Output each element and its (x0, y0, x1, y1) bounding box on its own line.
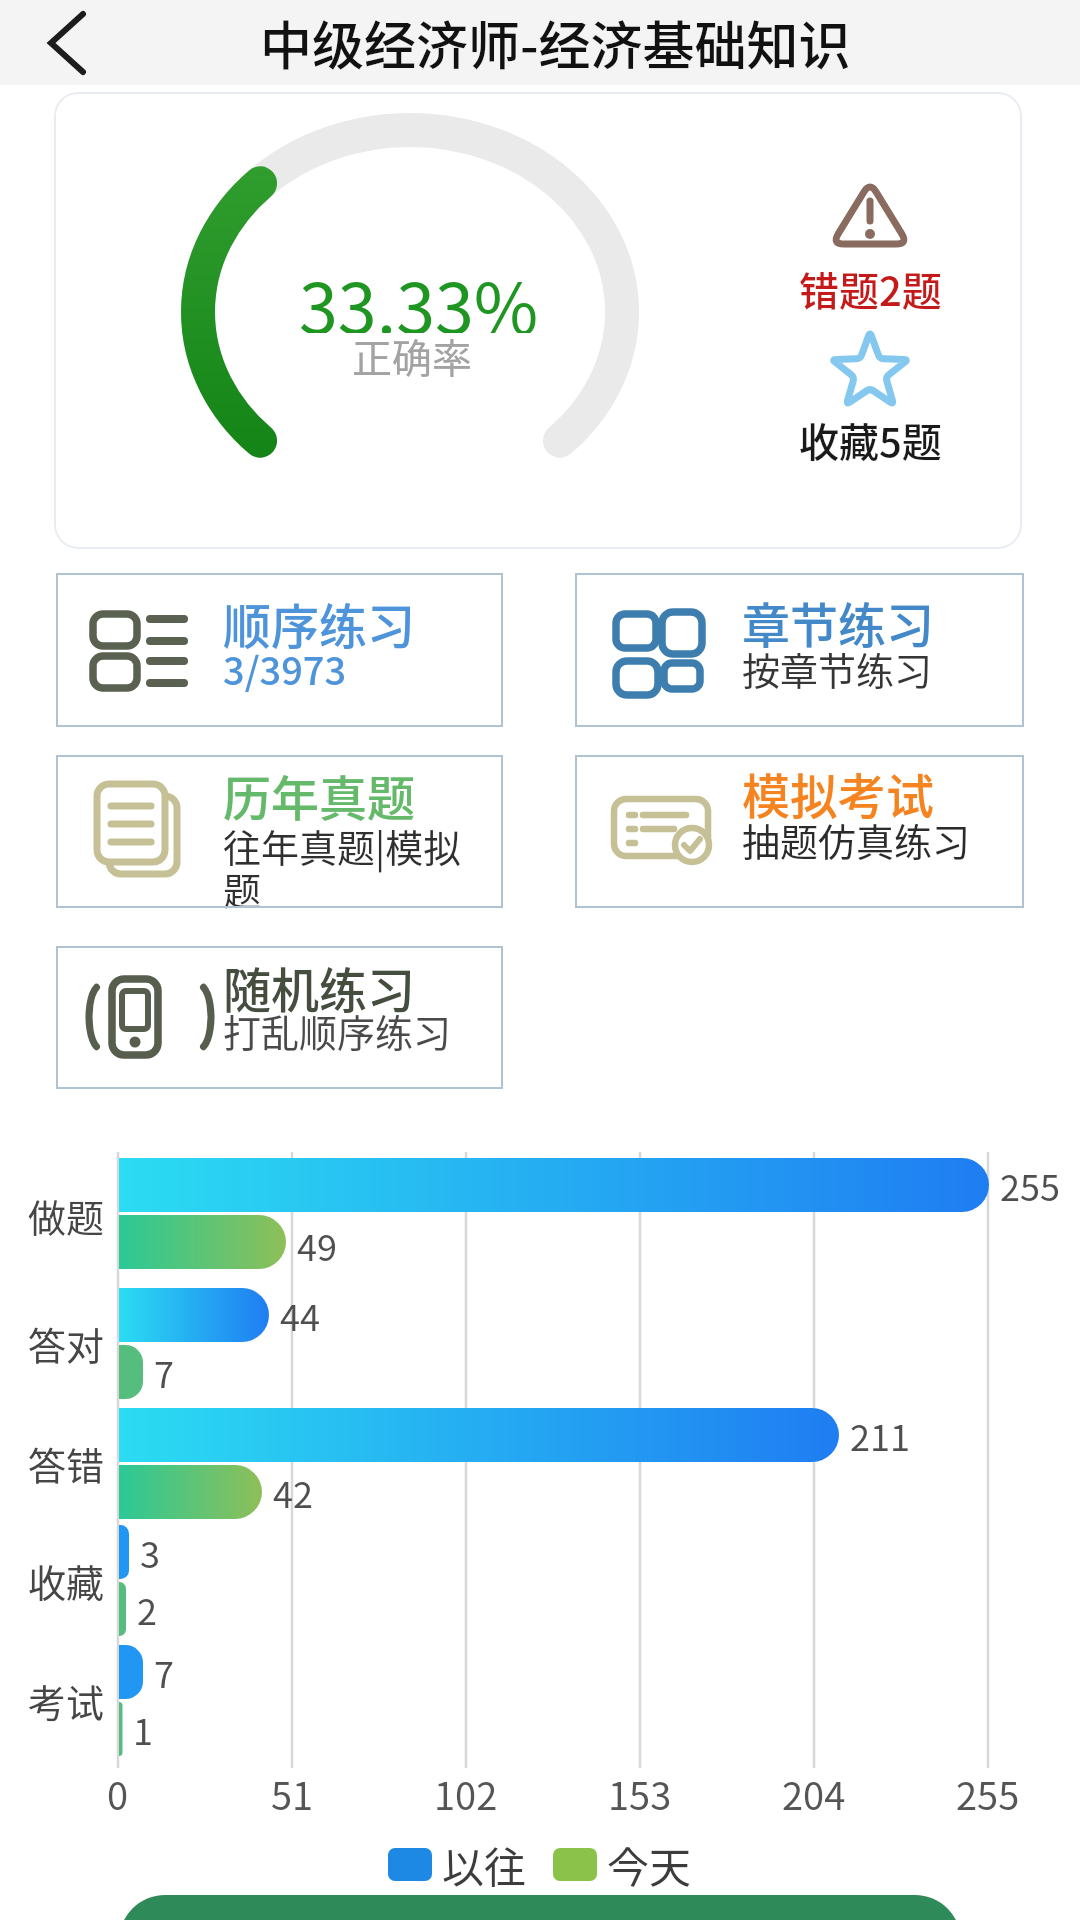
button[interactable] (119, 1895, 961, 1920)
staticText: 204 (782, 1766, 846, 1821)
staticText: 7 (154, 1346, 174, 1398)
staticText: 历年真题 (223, 760, 416, 830)
button[interactable] (36, 8, 100, 78)
staticText: 中级经济师-经济基础知识 (260, 5, 851, 75)
staticText: 7 (154, 1646, 174, 1698)
staticText: 答错 (28, 1436, 105, 1491)
staticText: 44 (280, 1289, 320, 1341)
staticText: 答对 (28, 1316, 105, 1371)
staticText: 3/3973 (223, 641, 347, 696)
staticText: 打乱顺序练习 (223, 1003, 452, 1058)
button[interactable]: 历年真题 (56, 755, 503, 908)
staticText: 1 (133, 1703, 153, 1755)
staticText: 3 (140, 1526, 160, 1578)
staticText: 做题 (28, 1188, 105, 1243)
staticText: 以往 (442, 1834, 527, 1895)
button[interactable]: 模拟考试 (575, 755, 1024, 908)
staticText: 42 (273, 1466, 313, 1518)
staticText: 153 (608, 1766, 672, 1821)
staticText: 模拟考试 (742, 758, 935, 828)
staticText: 错题2题 (799, 260, 942, 318)
button[interactable]: 随机练习 (56, 946, 503, 1089)
staticText: 收藏 (28, 1553, 105, 1608)
staticText: 收藏5题 (799, 411, 942, 469)
staticText: 考试 (28, 1673, 105, 1728)
button[interactable]: 顺序练习 (56, 573, 503, 727)
staticText: 按章节练习 (742, 641, 933, 696)
staticText: 211 (850, 1409, 910, 1461)
staticText: 2 (137, 1583, 157, 1635)
staticText: 今天 (607, 1834, 692, 1895)
staticText: 33.33% (299, 253, 539, 333)
staticText: 51 (271, 1766, 314, 1821)
staticText: 102 (434, 1766, 498, 1821)
staticText: 255 (956, 1766, 1020, 1821)
staticText: 正确率 (352, 327, 472, 385)
staticText: 255 (1000, 1159, 1060, 1211)
staticText: 章节练习 (742, 587, 935, 657)
staticText: 49 (297, 1219, 337, 1271)
staticText: 往年真题|模拟题 (223, 818, 475, 916)
button[interactable]: 章节练习 (575, 573, 1024, 727)
staticText: 0 (107, 1766, 129, 1821)
staticText: 抽题仿真练习 (742, 812, 971, 867)
staticText: 顺序练习 (223, 588, 416, 658)
staticText: 随机练习 (223, 952, 416, 1022)
